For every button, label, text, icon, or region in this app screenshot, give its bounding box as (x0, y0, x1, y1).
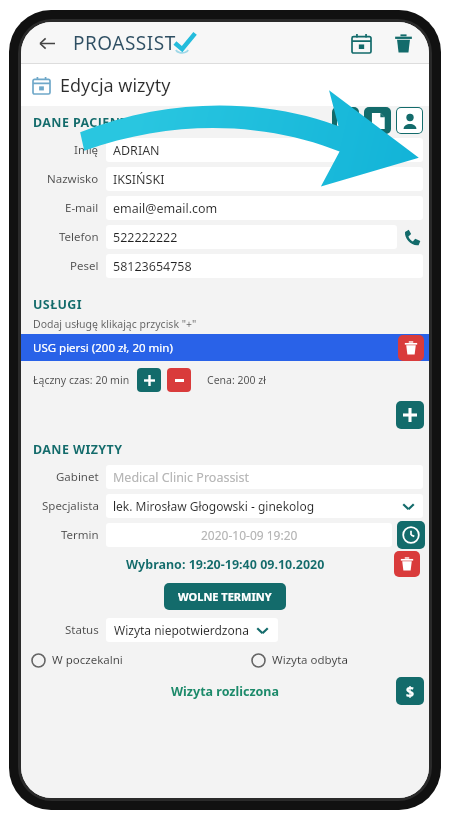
staticText: Wizyta niepotwierdzona (114, 622, 249, 638)
staticText: lek. Mirosław Głogowski - ginekolog (113, 498, 315, 514)
staticText: USŁUGI (33, 296, 83, 313)
staticText: USG piersi (200 zł, 20 min) (33, 340, 173, 356)
button[interactable]: Clear term (394, 551, 420, 577)
button[interactable]: 522222222 (106, 225, 397, 249)
button[interactable]: Wizyta odbyta (251, 652, 348, 668)
button[interactable]: IKSIŃSKI (106, 167, 423, 191)
staticText: Edycja wizyty (60, 73, 171, 98)
staticText: WOLNE TERMINY (178, 589, 272, 604)
staticText: Imię (74, 142, 99, 158)
button[interactable]: Pick time (397, 521, 425, 549)
button[interactable]: Calendar (345, 27, 377, 59)
button[interactable]: Medical Clinic Proassist (106, 465, 423, 489)
staticText: E-mail (65, 200, 99, 216)
button[interactable]: Call (401, 226, 423, 248)
staticText: Nazwisko (47, 171, 99, 187)
button[interactable]: Delete (387, 27, 419, 59)
staticText: email@email.com (113, 200, 218, 217)
staticText: 522222222 (113, 229, 178, 246)
staticText: Łączny czas: 20 min (33, 373, 130, 387)
button[interactable]: 2020-10-09 19:20 (106, 523, 392, 547)
button[interactable]: USG piersi (200 zł, 20 min) (21, 334, 429, 361)
button[interactable]: 58123654758 (106, 254, 423, 278)
staticText: Pesel (70, 258, 99, 274)
button[interactable]: Remove service (398, 335, 424, 361)
button[interactable]: Decrease time (167, 368, 191, 392)
staticText: 2020-10-09 19:20 (201, 527, 298, 543)
staticText: Status (65, 622, 99, 638)
button[interactable]: lek. Mirosław Głogowski - ginekolog (106, 494, 423, 518)
staticText: DANE PACJENTA (33, 114, 137, 131)
button[interactable]: Patient profile (396, 107, 423, 134)
staticText: Gabinet (56, 469, 99, 485)
button[interactable]: Take photo (332, 107, 359, 134)
button[interactable]: Payment (396, 677, 424, 705)
staticText: ADRIAN (113, 142, 160, 159)
staticText: PROASSIST (73, 30, 176, 56)
staticText: Cena: 200 zł (207, 373, 266, 387)
button[interactable]: Documents (364, 107, 391, 134)
staticText: Medical Clinic Proassist (113, 469, 250, 486)
button[interactable]: WOLNE TERMINY (164, 583, 286, 610)
staticText: IKSIŃSKI (113, 171, 165, 188)
button[interactable]: ADRIAN (106, 138, 423, 162)
button[interactable]: Add service (396, 401, 424, 429)
staticText: Dodaj usługę klikając przycisk "+" (33, 317, 197, 331)
staticText: $ (406, 682, 415, 701)
staticText: Wybrano: 19:20-19:40 09.10.2020 (126, 556, 325, 573)
button[interactable]: Increase time (137, 368, 161, 392)
staticText: DANE WIZYTY (33, 441, 123, 458)
staticText: Telefon (59, 229, 99, 245)
staticText: Termin (61, 527, 99, 543)
button[interactable]: Back (31, 28, 61, 58)
button[interactable]: Wizyta niepotwierdzona (106, 618, 278, 642)
button[interactable]: email@email.com (106, 196, 423, 220)
button[interactable]: W poczekalni (31, 652, 123, 668)
staticText: 58123654758 (113, 258, 192, 275)
staticText: Wizyta odbyta (272, 652, 348, 668)
staticText: Specjalista (42, 498, 99, 514)
staticText: W poczekalni (52, 652, 123, 668)
button[interactable]: Wizyta rozliczona (171, 683, 279, 700)
